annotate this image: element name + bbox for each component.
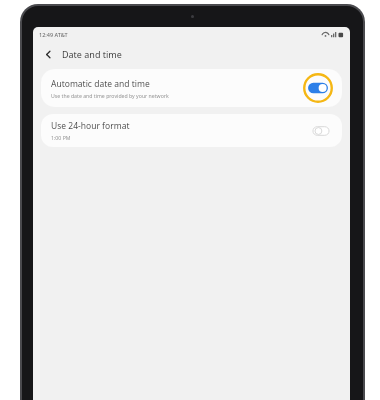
button[interactable]: Automatic date and time [41,69,342,107]
staticText: Use the date and time provided by your n… [51,92,169,99]
staticText: Automatic date and time [51,78,150,90]
staticText: Use 24-hour format [51,120,130,132]
staticText: 12:49 AT&T [39,31,68,38]
button[interactable]: Back [39,45,57,63]
button[interactable]: Toggle on [302,72,334,104]
staticText: Date and time [62,48,122,60]
staticText: 1:00 PM [51,134,71,141]
button[interactable]: Toggle off [308,118,334,144]
button[interactable]: Use 24-hour format [41,114,342,147]
